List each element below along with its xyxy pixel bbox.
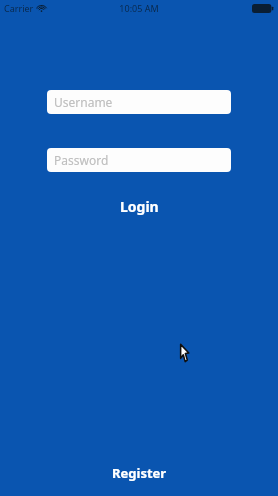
button[interactable]: Register <box>98 461 181 485</box>
button[interactable]: Username <box>47 90 231 114</box>
staticText: Carrier <box>4 2 34 14</box>
staticText: Username <box>54 94 113 110</box>
button[interactable]: Password <box>47 148 231 172</box>
staticText: Login <box>120 197 159 216</box>
staticText: Password <box>54 152 109 168</box>
staticText: Register <box>112 464 167 482</box>
staticText: 10:05 AM <box>119 2 159 14</box>
button[interactable]: Login <box>106 194 173 219</box>
